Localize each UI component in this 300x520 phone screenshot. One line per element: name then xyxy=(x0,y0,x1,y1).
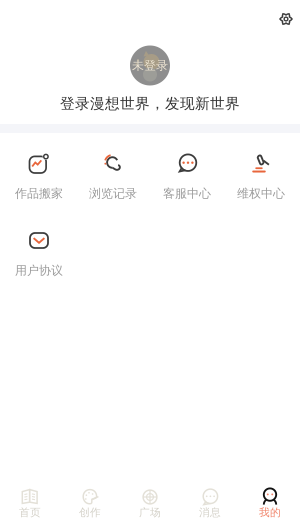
button[interactable]: 消息 xyxy=(180,477,240,520)
button[interactable]: 广场 xyxy=(120,477,180,520)
button[interactable]: 创作 xyxy=(60,477,120,520)
button[interactable]: 维权中心 xyxy=(224,151,298,197)
staticText: 我的 xyxy=(259,506,281,519)
staticText: 客服中心 xyxy=(163,186,211,201)
staticText: 浏览记录 xyxy=(89,186,137,201)
button[interactable]: 首页 xyxy=(0,477,60,520)
staticText: 创作 xyxy=(79,506,101,519)
staticText: 登录漫想世界，发现新世界 xyxy=(60,94,240,112)
staticText: 作品搬家 xyxy=(15,186,63,201)
staticText: 消息 xyxy=(199,506,221,519)
button[interactable]: 客服中心 xyxy=(150,151,224,197)
button[interactable]: Settings xyxy=(272,5,300,33)
button[interactable]: 浏览记录 xyxy=(76,151,150,197)
staticText: 未登录 xyxy=(132,58,168,73)
button[interactable]: 未登录 xyxy=(0,48,300,110)
button[interactable]: 作品搬家 xyxy=(2,151,76,197)
staticText: 广场 xyxy=(139,506,161,519)
button[interactable]: 用户协议 xyxy=(2,228,76,274)
staticText: 维权中心 xyxy=(237,186,285,201)
staticText: 用户协议 xyxy=(15,263,63,278)
staticText: 首页 xyxy=(19,506,41,519)
button[interactable]: 我的 xyxy=(240,477,300,520)
